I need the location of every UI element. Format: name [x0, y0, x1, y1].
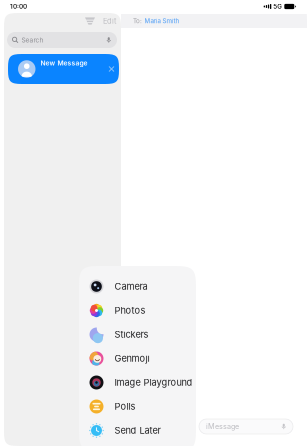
- button[interactable]: Filter: [81, 16, 99, 29]
- button[interactable]: Stickers: [79, 322, 196, 346]
- staticText: Polls: [114, 401, 135, 412]
- staticText: Maria Smith: [144, 17, 179, 25]
- button[interactable]: Camera: [79, 274, 196, 298]
- staticText: 10:00: [10, 3, 27, 10]
- staticText: Image Playground: [114, 377, 192, 388]
- button[interactable]: Edit: [99, 16, 120, 29]
- button[interactable]: Photos: [79, 298, 196, 322]
- staticText: Send Later: [114, 425, 160, 436]
- staticText: Camera: [114, 281, 147, 292]
- staticText: New Message: [40, 59, 87, 67]
- staticText: To:: [133, 17, 142, 25]
- staticText: Stickers: [114, 329, 148, 340]
- button[interactable]: New Message: [8, 54, 119, 84]
- staticText: Edit: [103, 16, 116, 25]
- button[interactable]: Genmoji: [79, 346, 196, 370]
- button[interactable]: Maria Smith: [144, 17, 179, 25]
- button[interactable]: Send Later: [79, 418, 196, 442]
- staticText: Genmoji: [114, 353, 149, 364]
- staticText: iMessage: [206, 422, 239, 431]
- button[interactable]: Image Playground: [79, 370, 196, 394]
- button[interactable]: Search: [7, 32, 117, 48]
- button[interactable]: Polls: [79, 394, 196, 418]
- staticText: Photos: [114, 305, 145, 316]
- staticText: Search: [21, 36, 43, 44]
- button[interactable]: iMessage: [199, 419, 293, 434]
- staticText: 5G: [273, 3, 282, 10]
